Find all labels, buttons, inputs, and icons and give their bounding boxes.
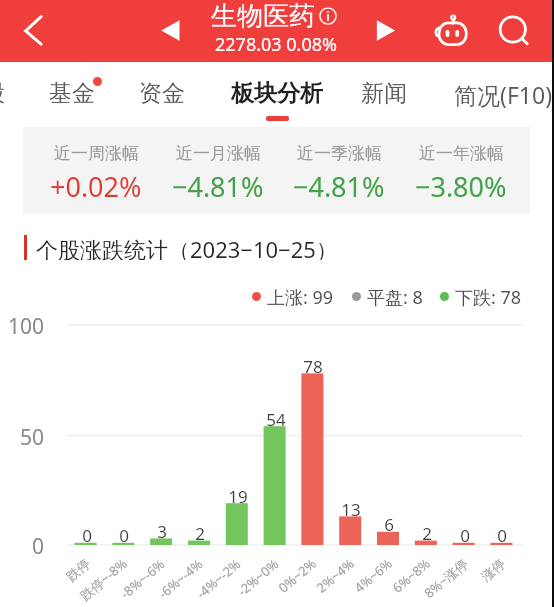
staticText: 基金 xyxy=(49,79,95,108)
staticText: 生物医药 xyxy=(211,0,315,33)
staticText: 新闻 xyxy=(361,79,407,108)
staticText: 50 xyxy=(20,423,45,449)
staticText: 近一月涨幅 xyxy=(176,143,261,164)
button[interactable]: 平盘: 8 xyxy=(352,285,423,307)
staticText: 2 xyxy=(195,522,205,543)
button[interactable]: 基金 xyxy=(27,62,117,127)
staticText: 跌停~-8% xyxy=(76,554,131,604)
staticText: 近一周涨幅 xyxy=(54,143,139,164)
button[interactable]: Previous sector xyxy=(152,11,188,47)
staticText: 股 xyxy=(0,79,5,108)
staticText: 资金 xyxy=(139,79,185,108)
button[interactable]: 近一周涨幅 xyxy=(41,127,151,214)
staticText: 近一季涨幅 xyxy=(297,143,382,164)
button[interactable]: 近一季涨幅 xyxy=(284,127,394,214)
button[interactable]: 资金 xyxy=(117,62,207,127)
staticText: 2%~4% xyxy=(312,554,358,597)
staticText: 涨停 xyxy=(478,555,508,584)
staticText: 13 xyxy=(341,498,361,519)
button[interactable]: Next sector xyxy=(367,11,403,47)
staticText: 0 xyxy=(119,524,129,545)
staticText: 简况(F10) xyxy=(454,79,553,110)
staticText: −4.81% xyxy=(172,168,264,205)
staticText: -6%~-4% xyxy=(155,554,207,602)
staticText: 3 xyxy=(157,520,167,541)
staticText: 跌停 xyxy=(63,555,93,584)
button[interactable]: Back xyxy=(10,8,56,54)
button[interactable]: Search xyxy=(495,8,537,50)
button[interactable]: 股 xyxy=(0,62,15,127)
staticText: 板块分析 xyxy=(231,79,323,108)
staticText: 100 xyxy=(8,312,45,338)
staticText: 0 xyxy=(460,524,470,545)
staticText: −3.80% xyxy=(415,168,507,205)
staticText: 8%~涨停 xyxy=(420,554,472,602)
button[interactable]: 上涨: 99 xyxy=(252,285,334,307)
staticText: -2%~0% xyxy=(234,554,283,600)
button[interactable]: AI assistant xyxy=(432,8,474,50)
staticText: 4%~6% xyxy=(350,554,396,597)
staticText: 0%~2% xyxy=(274,554,320,597)
button[interactable]: 近一年涨幅 xyxy=(406,127,516,214)
staticText: -4%~-2% xyxy=(193,554,245,602)
button[interactable]: 板块分析 xyxy=(222,62,332,127)
staticText: 平盘: 8 xyxy=(367,285,423,307)
staticText: 78 xyxy=(303,355,323,376)
button[interactable]: 简况(F10) xyxy=(453,62,553,127)
staticText: 0 xyxy=(497,524,507,545)
staticText: 近一年涨幅 xyxy=(419,143,504,164)
staticText: 0 xyxy=(32,532,45,558)
staticText: 0 xyxy=(82,524,92,545)
staticText: 54 xyxy=(266,408,286,429)
staticText: 个股涨跌统计（2023−10−25） xyxy=(36,234,338,260)
staticText: 2 xyxy=(422,522,432,543)
button[interactable]: 下跌: 78 xyxy=(440,285,522,307)
staticText: +0.02% xyxy=(50,168,142,205)
staticText: 19 xyxy=(228,485,248,506)
staticText: 6%~8% xyxy=(388,554,434,597)
button[interactable]: 新闻 xyxy=(339,62,429,127)
staticText: 上涨: 99 xyxy=(267,285,334,307)
staticText: 6 xyxy=(384,513,394,534)
staticText: −4.81% xyxy=(293,168,385,205)
button[interactable]: 近一月涨幅 xyxy=(163,127,273,214)
staticText: 2278.03 0.08% xyxy=(215,32,337,57)
staticText: 下跌: 78 xyxy=(455,285,522,307)
button[interactable]: Sector info xyxy=(319,7,337,25)
staticText: -8%~-6% xyxy=(117,554,169,602)
